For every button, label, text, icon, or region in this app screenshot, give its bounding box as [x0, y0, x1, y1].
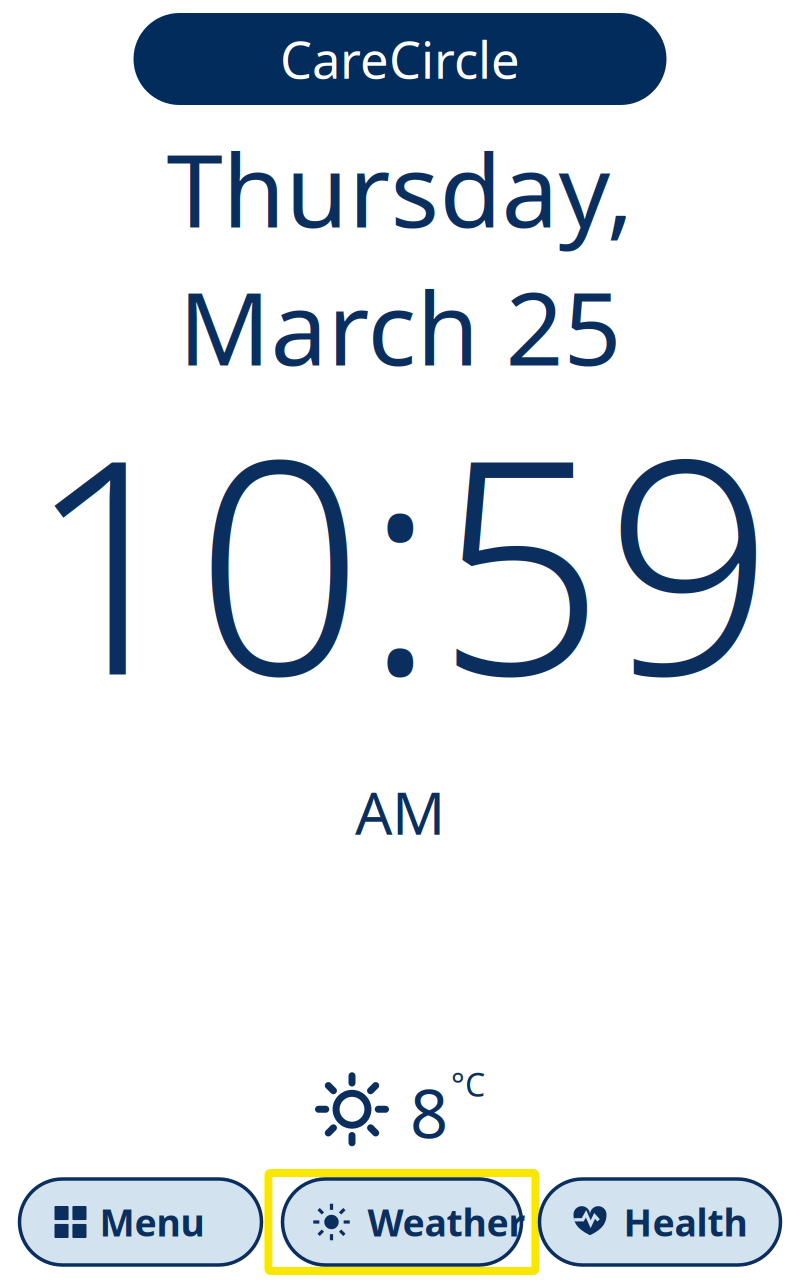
- staticText: CareCircle: [280, 25, 520, 93]
- staticText: AM: [355, 773, 445, 851]
- staticText: March 25: [178, 259, 621, 394]
- button[interactable]: CareCircle: [133, 13, 666, 105]
- staticText: Weather: [367, 1197, 525, 1247]
- staticText: Health: [623, 1197, 747, 1247]
- staticText: Thursday,: [166, 121, 633, 256]
- staticText: 8: [410, 1068, 448, 1156]
- staticText: °C: [451, 1063, 485, 1105]
- staticText: Menu: [99, 1197, 204, 1247]
- staticText: 10:59: [26, 363, 774, 756]
- button[interactable]: Menu: [19, 1179, 261, 1265]
- button[interactable]: Health: [539, 1179, 780, 1265]
- button[interactable]: Weather: [282, 1179, 521, 1265]
